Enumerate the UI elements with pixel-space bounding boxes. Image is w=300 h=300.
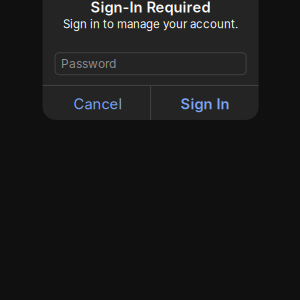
staticText: Sign in to manage your account.: [63, 17, 238, 31]
button[interactable]: Cancel: [42, 86, 150, 120]
staticText: Sign-In Required: [91, 0, 211, 16]
staticText: Cancel: [74, 95, 123, 113]
staticText: Sign In: [181, 95, 230, 113]
button[interactable]: Password: [55, 53, 246, 75]
staticText: Password: [61, 56, 116, 71]
button[interactable]: Sign In: [151, 86, 259, 120]
